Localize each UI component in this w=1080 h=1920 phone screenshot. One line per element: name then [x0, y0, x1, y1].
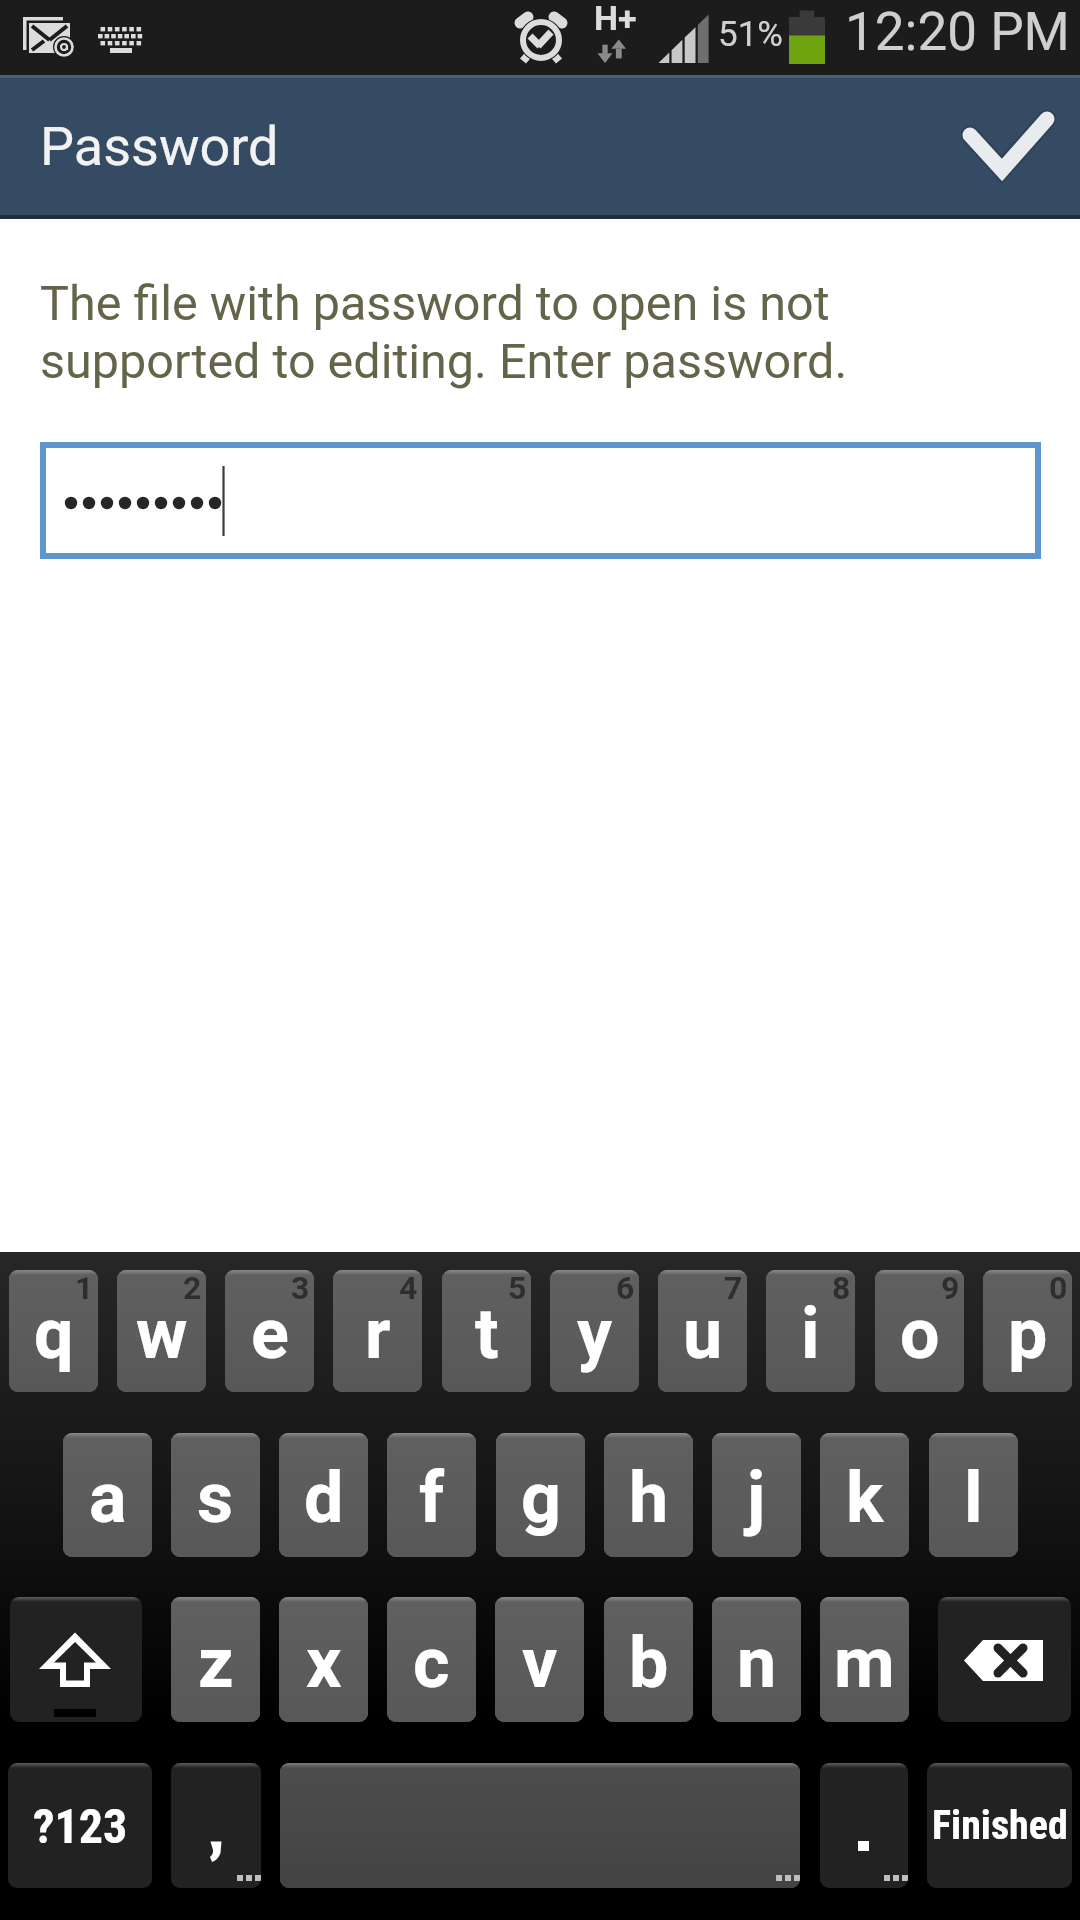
button[interactable]: Backspace	[938, 1597, 1071, 1722]
staticText: Password	[40, 115, 279, 178]
staticText: w	[136, 1293, 188, 1375]
staticText: g	[521, 1457, 561, 1539]
staticText: 0	[1049, 1270, 1068, 1307]
button[interactable]: o	[875, 1270, 964, 1392]
staticText: p	[1008, 1293, 1048, 1375]
staticText: 8	[832, 1270, 851, 1307]
staticText: 9	[941, 1270, 960, 1307]
staticText: s	[197, 1457, 234, 1539]
staticText: c	[413, 1622, 450, 1704]
staticText: u	[683, 1293, 723, 1375]
button[interactable]: p	[983, 1270, 1072, 1392]
staticText: d	[304, 1457, 344, 1539]
staticText: y	[577, 1293, 613, 1375]
staticText: j	[747, 1457, 766, 1539]
button[interactable]: y	[550, 1270, 639, 1392]
staticText: h	[629, 1457, 669, 1539]
staticText: z	[198, 1622, 234, 1704]
button[interactable]: l	[929, 1433, 1018, 1557]
staticText: The file with password to open is not su…	[40, 275, 940, 390]
button[interactable]: Space	[280, 1763, 800, 1888]
button[interactable]: Finished	[927, 1763, 1072, 1888]
staticText: 51%	[718, 14, 783, 55]
staticText: n	[737, 1622, 777, 1704]
staticText: a	[89, 1457, 127, 1539]
button[interactable]	[40, 442, 1041, 559]
button[interactable]: Comma	[171, 1763, 261, 1888]
button[interactable]: e	[225, 1270, 314, 1392]
staticText: 5	[508, 1270, 527, 1307]
button[interactable]: h	[604, 1433, 693, 1557]
staticText: v	[522, 1622, 558, 1704]
staticText: 2	[183, 1270, 202, 1307]
button[interactable]: a	[63, 1433, 152, 1557]
staticText: q	[34, 1293, 74, 1375]
staticText: 1	[75, 1270, 94, 1307]
button[interactable]: x	[279, 1597, 368, 1722]
staticText: t	[475, 1293, 499, 1375]
button[interactable]: Shift	[10, 1597, 142, 1722]
staticText: 12:20 PM	[845, 1, 1070, 63]
staticText: r	[365, 1293, 391, 1375]
button[interactable]: n	[712, 1597, 801, 1722]
button[interactable]: u	[658, 1270, 747, 1392]
button[interactable]: f	[387, 1433, 476, 1557]
staticText: ?123	[33, 1798, 128, 1854]
button[interactable]: j	[712, 1433, 801, 1557]
staticText: o	[900, 1293, 940, 1375]
button[interactable]: c	[387, 1597, 476, 1722]
button[interactable]: g	[496, 1433, 585, 1557]
button[interactable]: d	[279, 1433, 368, 1557]
staticText: 6	[616, 1270, 635, 1307]
staticText: e	[251, 1293, 289, 1375]
button[interactable]: b	[604, 1597, 693, 1722]
button[interactable]: k	[820, 1433, 909, 1557]
staticText: i	[801, 1293, 820, 1375]
button[interactable]: q	[9, 1270, 98, 1392]
staticText: Finished	[932, 1802, 1068, 1849]
staticText: 3	[291, 1270, 310, 1307]
staticText: 7	[724, 1270, 743, 1307]
button[interactable]: z	[171, 1597, 260, 1722]
button[interactable]: Confirm	[940, 75, 1080, 219]
staticText: b	[629, 1622, 669, 1704]
button[interactable]: ?123	[8, 1763, 152, 1888]
staticText: m	[834, 1622, 895, 1704]
staticText: k	[846, 1457, 884, 1539]
button[interactable]: i	[766, 1270, 855, 1392]
button[interactable]: r	[333, 1270, 422, 1392]
staticText: 4	[399, 1270, 418, 1307]
button[interactable]: v	[495, 1597, 584, 1722]
button[interactable]: t	[442, 1270, 531, 1392]
button[interactable]: Period	[820, 1763, 908, 1888]
button[interactable]: s	[171, 1433, 260, 1557]
staticText: H+	[594, 0, 637, 38]
staticText: l	[964, 1457, 983, 1539]
button[interactable]: w	[117, 1270, 206, 1392]
staticText: f	[419, 1457, 445, 1539]
button[interactable]: m	[820, 1597, 909, 1722]
staticText: x	[306, 1622, 342, 1704]
